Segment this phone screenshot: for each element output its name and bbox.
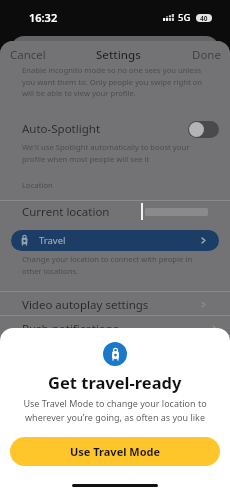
staticText: We'll use Spotlight automatically to boo… [22, 142, 208, 164]
staticText: Video autoplay settings [22, 297, 149, 313]
staticText: Current location [22, 204, 110, 220]
staticText: Use Travel Mode [70, 444, 161, 459]
button[interactable]: Done [186, 43, 230, 67]
button[interactable]: Video autoplay settings [0, 293, 230, 316]
staticText: Push notifications [22, 321, 119, 337]
staticText: Travel [39, 234, 66, 247]
staticText: Location [22, 180, 53, 190]
staticText: Enable incognito mode so no one sees you… [22, 65, 208, 98]
button[interactable]: Travel [11, 230, 219, 251]
button[interactable]: Cancel [0, 43, 52, 67]
staticText: Settings [96, 47, 141, 63]
button[interactable]: Current location [0, 202, 230, 221]
staticText: Cancel [10, 47, 46, 63]
button[interactable]: Use Travel Mode [10, 437, 220, 466]
staticText: Change your location to connect with peo… [22, 254, 208, 276]
staticText: 5G [178, 11, 191, 24]
staticText: Use Travel Mode to change your location … [16, 397, 214, 424]
button[interactable]: Auto-Spotlight [0, 120, 230, 138]
staticText: Done [192, 47, 221, 63]
button[interactable]: Push notifications [0, 317, 230, 340]
staticText: Get travel-ready [48, 371, 182, 393]
staticText: 16:32 [29, 10, 58, 25]
staticText: Auto-Spotlight [22, 121, 101, 137]
staticText: 40 [200, 14, 208, 22]
